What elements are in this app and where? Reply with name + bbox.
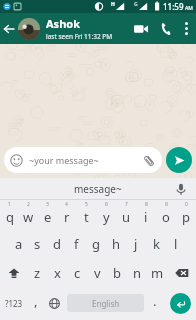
staticText: , <box>34 292 38 310</box>
button[interactable]: c <box>67 258 87 288</box>
staticText: Ashok <box>46 16 80 31</box>
staticText: 4 <box>65 201 68 208</box>
button[interactable]: Send <box>166 147 192 173</box>
staticText: last seen Fri 11:32 PM <box>46 32 113 41</box>
staticText: b <box>113 264 121 282</box>
staticText: w <box>23 208 34 226</box>
button[interactable]: Call <box>154 13 178 44</box>
staticText: l <box>174 235 178 253</box>
staticText: H <box>111 1 115 8</box>
button[interactable]: 4 <box>57 200 76 229</box>
button[interactable]: l <box>166 229 186 258</box>
staticText: ?123 <box>5 298 23 309</box>
button[interactable]: 5 <box>76 200 96 229</box>
button[interactable]: Enter <box>170 293 191 314</box>
staticText: k <box>153 235 160 253</box>
staticText: u <box>122 208 131 226</box>
button[interactable]: j <box>126 229 146 258</box>
staticText: e <box>44 208 52 226</box>
button[interactable]: 3 <box>38 200 57 229</box>
button[interactable]: s <box>28 229 47 258</box>
button[interactable]: 8 <box>136 200 156 229</box>
button[interactable]: Shift <box>0 258 28 288</box>
button[interactable]: x <box>47 258 67 288</box>
button[interactable]: Attach <box>143 154 156 167</box>
button[interactable]: message~ <box>74 182 122 196</box>
staticText: ~your message~ <box>29 154 99 166</box>
staticText: f <box>74 235 79 253</box>
staticText: n <box>133 264 142 282</box>
staticText: x <box>54 264 61 282</box>
staticText: 6 <box>105 201 108 208</box>
button[interactable]: f <box>66 229 86 258</box>
staticText: q <box>6 208 14 226</box>
button[interactable]: Backspace <box>167 258 196 288</box>
button[interactable]: . <box>146 288 164 318</box>
staticText: G <box>134 1 138 8</box>
staticText: z <box>34 264 41 282</box>
staticText: s <box>34 235 41 253</box>
button[interactable]: b <box>107 258 127 288</box>
button[interactable]: z <box>28 258 47 288</box>
button[interactable]: 0 <box>176 200 196 229</box>
staticText: h <box>112 235 121 253</box>
staticText: English <box>92 298 120 309</box>
staticText: 0 <box>185 201 188 208</box>
button[interactable]: k <box>146 229 166 258</box>
staticText: y <box>103 208 110 226</box>
button[interactable]: 6 <box>96 200 116 229</box>
staticText: 11:59 <box>163 1 184 12</box>
staticText: p <box>182 208 190 226</box>
staticText: m <box>151 264 164 282</box>
staticText: d <box>53 235 61 253</box>
staticText: g <box>92 235 100 253</box>
button[interactable]: 9 <box>156 200 176 229</box>
staticText: j <box>134 235 138 253</box>
button[interactable]: h <box>106 229 126 258</box>
staticText: 3 <box>46 201 49 208</box>
button[interactable]: 2 <box>19 200 38 229</box>
button[interactable]: a <box>9 229 28 258</box>
button[interactable]: v <box>87 258 107 288</box>
staticText: . <box>153 292 157 310</box>
staticText: 2 <box>27 201 30 208</box>
button[interactable]: Voice input <box>174 182 188 196</box>
button[interactable]: g <box>86 229 106 258</box>
staticText: c <box>74 264 81 282</box>
button[interactable]: More options <box>178 13 194 44</box>
staticText: i <box>144 208 148 226</box>
button[interactable]: , <box>27 288 44 318</box>
button[interactable]: Ashok <box>18 13 128 44</box>
staticText: 9 <box>165 201 168 208</box>
staticText: a <box>15 235 23 253</box>
button[interactable]: m <box>147 258 167 288</box>
button[interactable]: n <box>127 258 147 288</box>
button[interactable]: 1 <box>0 200 19 229</box>
staticText: r <box>64 208 70 226</box>
button[interactable]: Back <box>0 13 18 44</box>
button[interactable]: Video call <box>128 13 154 44</box>
staticText: AM <box>185 5 193 12</box>
button[interactable]: Change language <box>44 288 65 318</box>
button[interactable]: 7 <box>116 200 136 229</box>
staticText: v <box>94 264 101 282</box>
button[interactable]: English <box>67 294 144 312</box>
staticText: 7 <box>125 201 128 208</box>
staticText: 8 <box>145 201 148 208</box>
button[interactable]: ?123 <box>0 288 27 318</box>
button[interactable]: Emoji <box>4 147 162 173</box>
staticText: t <box>84 208 89 226</box>
staticText: 5 <box>85 201 88 208</box>
button[interactable]: d <box>47 229 66 258</box>
staticText: 1 <box>8 201 11 208</box>
button[interactable]: Emoji <box>10 154 23 167</box>
staticText: o <box>162 208 170 226</box>
